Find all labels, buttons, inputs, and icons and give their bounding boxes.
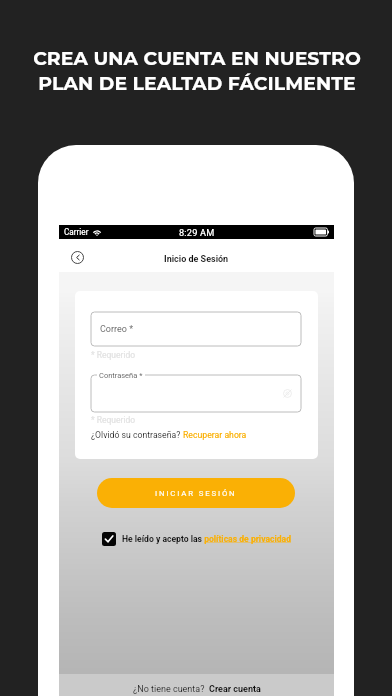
button[interactable]: Crear cuenta — [209, 684, 261, 695]
button[interactable]: Recuperar ahora — [183, 430, 247, 440]
button[interactable]: Contraseña * — [91, 375, 301, 412]
button[interactable]: Accept privacy policy — [102, 532, 116, 546]
staticText: ¿Olvidó su contraseña? — [91, 430, 183, 440]
button[interactable]: He leído y acepto las políticas de priva… — [122, 534, 292, 544]
staticText: Carrier — [64, 227, 89, 237]
staticText: INICIAR SESIÓN — [155, 489, 237, 498]
button[interactable]: Back — [64, 244, 90, 270]
button[interactable]: INICIAR SESIÓN — [97, 478, 295, 508]
staticText: 8:29 AM — [179, 227, 215, 238]
staticText: Inicio de Sesión — [164, 254, 229, 265]
staticText: CREA UNA CUENTA EN NUESTRO PLAN DE LEALT… — [33, 47, 361, 95]
button[interactable]: Correo * — [91, 312, 301, 346]
staticText: Contraseña * — [99, 371, 143, 380]
staticText: ¿No tiene cuenta? — [133, 684, 209, 695]
staticText: Correo * — [100, 324, 134, 335]
staticText: * Requerido — [91, 350, 136, 360]
staticText: * Requerido — [91, 415, 136, 425]
